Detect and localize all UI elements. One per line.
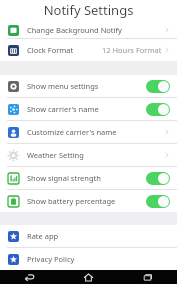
button[interactable]: Toggle on bbox=[146, 195, 170, 208]
button[interactable]: Clock Format bbox=[0, 39, 177, 61]
staticText: Show battery percentage bbox=[27, 196, 146, 206]
button[interactable]: Recents bbox=[118, 270, 177, 284]
staticText: Weather Setting bbox=[27, 150, 164, 160]
button[interactable]: Home bbox=[59, 270, 118, 284]
button[interactable]: Show battery percentage bbox=[0, 190, 177, 212]
staticText: Customize carrier's name bbox=[27, 127, 164, 137]
button[interactable]: Weather Setting bbox=[0, 144, 177, 166]
staticText: Show signal strength bbox=[27, 173, 146, 183]
button[interactable]: Change Background Notify bbox=[0, 21, 177, 38]
button[interactable]: Toggle on bbox=[146, 103, 170, 116]
staticText: Notify Settings bbox=[0, 1, 177, 19]
button[interactable]: Show menu settings bbox=[0, 75, 177, 97]
staticText: Privacy Policy bbox=[27, 254, 170, 264]
button[interactable]: Toggle on bbox=[146, 172, 170, 185]
button[interactable]: Back bbox=[0, 270, 59, 284]
button[interactable]: Privacy Policy bbox=[0, 248, 177, 270]
button[interactable]: Customize carrier's name bbox=[0, 121, 177, 143]
staticText: Clock Format bbox=[27, 45, 102, 55]
staticText: Change Background Notify bbox=[27, 25, 164, 35]
button[interactable]: Show signal strength bbox=[0, 167, 177, 189]
button[interactable]: Show carrier's name bbox=[0, 98, 177, 120]
staticText: 12 Hours Format bbox=[102, 45, 162, 55]
staticText: Show menu settings bbox=[27, 81, 146, 91]
button[interactable]: Toggle on bbox=[146, 80, 170, 93]
staticText: Rate app bbox=[27, 231, 170, 241]
staticText: Show carrier's name bbox=[27, 104, 146, 114]
button[interactable]: Rate app bbox=[0, 225, 177, 247]
